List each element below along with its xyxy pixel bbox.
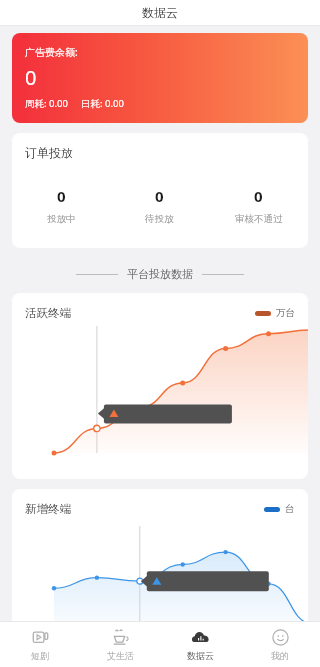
staticText: 数据云	[142, 5, 178, 20]
staticText: 0	[254, 186, 263, 206]
button[interactable]: 数据云	[160, 622, 240, 667]
staticText: 我的	[271, 650, 289, 661]
staticText: 0	[25, 64, 37, 91]
staticText: 短剧	[31, 650, 49, 661]
staticText: 艾生活	[107, 650, 134, 661]
staticText: 活跃终端	[25, 306, 71, 320]
staticText: 投放中	[47, 213, 76, 225]
staticText: 万台	[276, 307, 295, 319]
button[interactable]: 订单投放	[12, 133, 308, 248]
staticText: 审核不通过	[235, 213, 283, 225]
staticText: 日耗: 0.00	[81, 97, 124, 110]
button[interactable]: 活跃终端	[12, 293, 308, 479]
staticText: 新增终端	[25, 502, 71, 516]
button[interactable]: 我的	[240, 622, 320, 667]
staticText: 数据云	[187, 650, 214, 661]
staticText: 0	[57, 186, 66, 206]
button[interactable]: 短剧	[0, 622, 80, 667]
staticText: 待投放	[145, 213, 174, 225]
button[interactable]: 0	[12, 186, 110, 225]
staticText: 订单投放	[25, 145, 73, 160]
button[interactable]: 0	[110, 186, 209, 225]
staticText: 广告费余额:	[25, 45, 78, 59]
button[interactable]: 艾生活	[80, 622, 160, 667]
button[interactable]: 广告费余额:	[12, 33, 308, 123]
staticText: 0	[155, 186, 164, 206]
staticText: 周耗: 0.00	[25, 97, 68, 110]
staticText: 平台投放数据	[127, 267, 193, 281]
button[interactable]: 新增终端	[12, 489, 308, 621]
staticText: 台	[285, 503, 295, 515]
button[interactable]: 0	[209, 186, 308, 225]
